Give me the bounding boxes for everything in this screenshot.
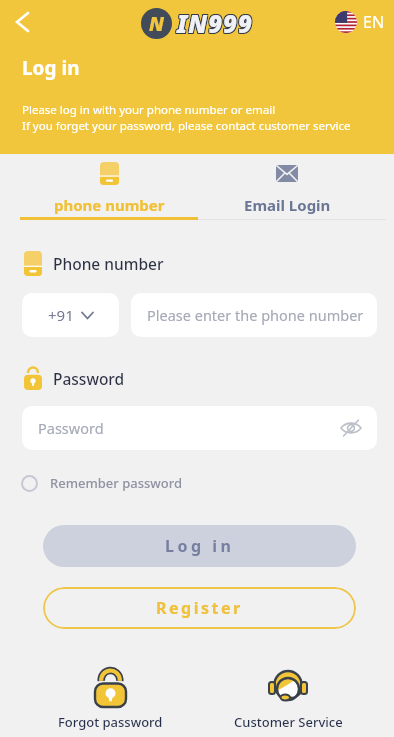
staticText: IN999 bbox=[177, 7, 253, 40]
button[interactable] bbox=[0, 0, 44, 44]
button[interactable]: Forgot password bbox=[50, 669, 170, 731]
staticText: Log in bbox=[165, 535, 235, 557]
button[interactable]: EN bbox=[335, 11, 385, 33]
button[interactable]: Remember password bbox=[21, 474, 183, 492]
staticText: Remember password bbox=[50, 474, 183, 492]
staticText: If you forget your password, please cont… bbox=[22, 118, 351, 134]
button[interactable]: Register bbox=[43, 587, 356, 629]
staticText: Forgot password bbox=[58, 713, 163, 731]
staticText: N bbox=[149, 11, 165, 37]
staticText: IN999 bbox=[178, 7, 254, 40]
staticText: IN999 bbox=[177, 6, 253, 39]
staticText: IN999 bbox=[176, 6, 252, 39]
staticText: Register bbox=[156, 597, 243, 619]
staticText: IN999 bbox=[176, 7, 252, 40]
staticText: Email Login bbox=[244, 195, 331, 215]
staticText: IN999 bbox=[178, 8, 254, 41]
staticText: +91 bbox=[48, 305, 74, 325]
staticText: EN bbox=[363, 11, 385, 33]
staticText: Phone number bbox=[53, 253, 164, 274]
button[interactable]: phone number bbox=[20, 154, 198, 220]
staticText: IN999 bbox=[178, 6, 254, 39]
staticText: IN999 bbox=[176, 8, 252, 41]
button[interactable]: +91 bbox=[22, 293, 119, 337]
staticText: IN999 bbox=[177, 8, 253, 41]
button[interactable]: Please enter the phone number bbox=[131, 293, 377, 337]
staticText: phone number bbox=[54, 195, 165, 215]
staticText: Password bbox=[38, 418, 104, 438]
staticText: Please enter the phone number bbox=[147, 305, 364, 325]
button[interactable]: Email Login bbox=[198, 154, 376, 220]
button[interactable]: Password bbox=[22, 406, 377, 450]
staticText: Please log in with your phone number or … bbox=[22, 102, 276, 118]
button[interactable]: Customer Service bbox=[228, 669, 348, 731]
staticText: Log in bbox=[22, 55, 80, 81]
button[interactable]: Log in bbox=[43, 525, 356, 567]
staticText: Password bbox=[53, 368, 125, 389]
staticText: Customer Service bbox=[234, 713, 343, 731]
